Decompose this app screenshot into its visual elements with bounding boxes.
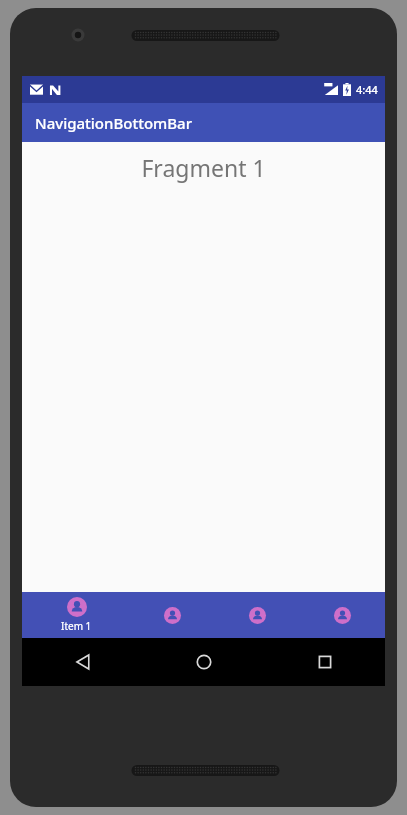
button[interactable]: Home: [143, 638, 264, 686]
button[interactable]: Recent apps: [264, 638, 385, 686]
staticText: NavigationBottomBar: [35, 113, 192, 133]
staticText: 4:44: [356, 82, 378, 97]
staticText: Fragment 1: [141, 152, 266, 183]
button[interactable]: Item 3: [215, 592, 300, 638]
staticText: Item 1: [61, 619, 92, 633]
button[interactable]: Back: [22, 638, 143, 686]
button[interactable]: Item 2: [130, 592, 215, 638]
button[interactable]: Item 4: [300, 592, 385, 638]
button[interactable]: Item 1: [22, 592, 130, 638]
